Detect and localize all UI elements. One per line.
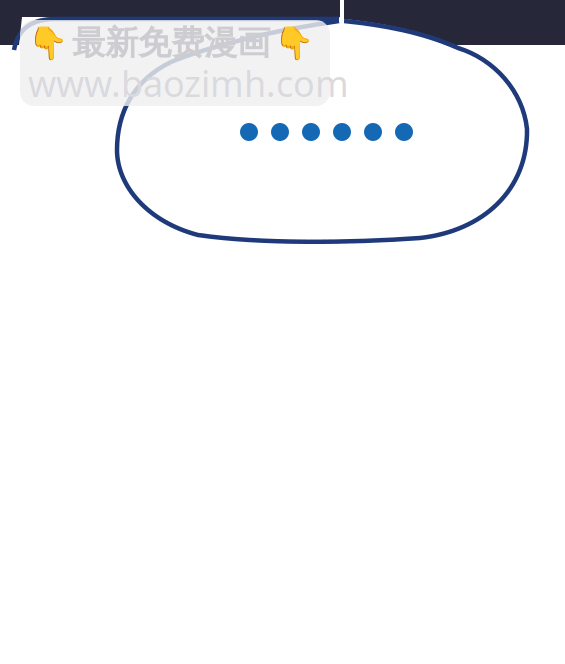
staticText: 最新免费漫画 xyxy=(72,22,270,63)
staticText: 👇 xyxy=(274,25,314,61)
staticText: www.baozimh.com xyxy=(28,59,349,107)
staticText: 👇 xyxy=(28,25,68,61)
